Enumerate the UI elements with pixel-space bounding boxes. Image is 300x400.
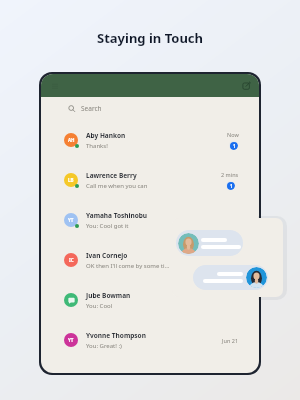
staticText: 2 mins (221, 171, 239, 178)
staticText: YT (68, 217, 74, 223)
staticText: You: Cool got it (86, 222, 129, 230)
button[interactable]: Search (68, 97, 259, 120)
staticText: AH (68, 137, 75, 143)
staticText: OK then I'll come by some ti... (86, 262, 170, 270)
button[interactable]: Compose new message (240, 79, 253, 92)
staticText: Thanks! (86, 142, 108, 150)
staticText: Lawrence Berry (86, 171, 137, 180)
staticText: You: Great! :) (86, 342, 122, 350)
button[interactable]: IC (64, 240, 239, 280)
button[interactable] (172, 218, 283, 297)
staticText: Jube Bowman (86, 291, 131, 300)
staticText: Call me when you can (86, 182, 148, 190)
staticText: You: Cool (86, 302, 113, 310)
staticText: LB (68, 177, 74, 183)
staticText: Jun 21 (222, 337, 239, 344)
button[interactable]: Jube Bowman (64, 280, 239, 320)
staticText: Now (227, 131, 239, 138)
staticText: Yamaha Toshinobu (86, 211, 148, 220)
staticText: Aby Hankon (86, 131, 126, 140)
button[interactable]: AH (64, 120, 239, 160)
button[interactable]: YT (64, 200, 239, 240)
staticText: Yvonne Thompson (86, 331, 146, 340)
staticText: 1 (233, 143, 236, 149)
staticText: Staying in Touch (97, 29, 203, 47)
button[interactable]: YT (64, 320, 239, 360)
staticText: Search (81, 104, 102, 113)
staticText: IC (69, 257, 74, 263)
staticText: YT (68, 337, 74, 343)
staticText: 1 (230, 183, 233, 189)
staticText: Ivan Cornejo (86, 251, 128, 260)
button[interactable]: LB (64, 160, 239, 200)
